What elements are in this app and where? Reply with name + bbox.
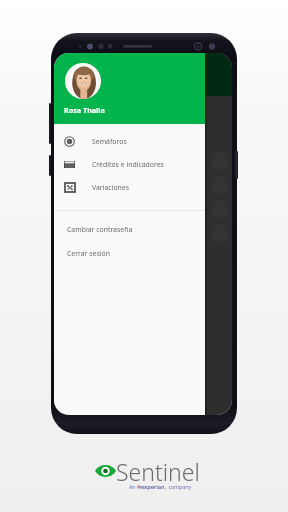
button[interactable]: Variaciones [54,176,205,199]
button[interactable]: Close navigation drawer [54,53,232,415]
button[interactable]: Cerrar sesión [54,242,205,265]
staticText: Créditos e indicadores [92,160,164,169]
button[interactable]: Créditos e indicadores [54,153,205,176]
staticText: Semáforos [92,137,127,146]
staticText: Sentinel [116,456,200,487]
staticText: Cerrar sesión [67,249,110,258]
staticText: company [167,483,192,490]
staticText: An [129,483,137,490]
button[interactable]: Profile photo of Rosa Thalia [65,63,101,99]
staticText: Variaciones [92,183,130,192]
button[interactable]: Cambiar contraseña [54,218,205,241]
staticText: Rosa Thalia [64,105,105,115]
button[interactable]: Semáforos [54,130,205,153]
staticText: experian. [141,483,167,490]
staticText: Cambiar contraseña [67,225,133,234]
